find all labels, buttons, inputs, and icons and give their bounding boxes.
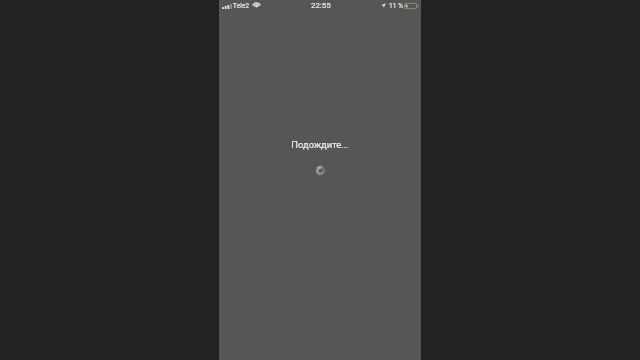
other: Battery 11 percent, low power mode: [404, 3, 419, 9]
other: Wi-Fi connected: [253, 2, 260, 7]
staticText: 22:55: [311, 1, 331, 10]
staticText: 11 %: [389, 2, 403, 10]
staticText: Подождите...: [291, 139, 349, 150]
other: Loading: [316, 166, 325, 175]
other: Cellular signal strength: [222, 4, 232, 9]
staticText: Tele2: [233, 2, 250, 9]
other: Location services active: [381, 3, 386, 8]
